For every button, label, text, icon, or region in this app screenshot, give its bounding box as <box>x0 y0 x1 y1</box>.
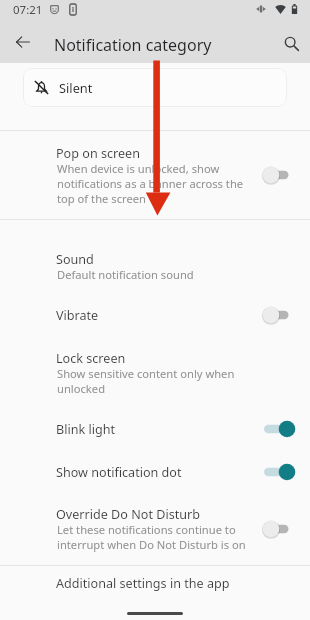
staticText: Pop on screen <box>56 145 140 162</box>
button[interactable]: Additional settings in the app <box>0 564 310 602</box>
staticText: Lock screen <box>56 350 126 367</box>
button[interactable]: Toggle off <box>262 517 298 541</box>
staticText: Default notification sound <box>57 267 194 282</box>
button[interactable]: Search <box>277 29 305 57</box>
staticText: Sound <box>56 251 94 268</box>
staticText: 07:21 <box>13 2 43 18</box>
staticText: Override Do Not Disturb <box>56 506 200 523</box>
button[interactable]: Show notification dot <box>0 453 310 491</box>
staticText: Silent <box>59 79 93 96</box>
staticText: Notification category <box>54 34 212 56</box>
button[interactable]: Toggle on <box>262 417 298 441</box>
staticText: Blink light <box>56 421 116 438</box>
button[interactable]: Toggle on <box>262 460 298 484</box>
button[interactable]: Sound <box>0 240 310 293</box>
staticText: Vibrate <box>56 307 99 324</box>
button[interactable]: Override Do Not Disturb <box>0 495 310 563</box>
staticText: Show notification dot <box>56 464 182 481</box>
staticText: When device is unlocked, show notificati… <box>57 161 244 206</box>
button[interactable]: Toggle off <box>262 303 298 327</box>
button[interactable]: Blink light <box>0 410 310 448</box>
staticText: Let these notifications continue to inte… <box>57 522 246 552</box>
button[interactable]: Vibrate <box>0 296 310 334</box>
button[interactable]: Lock screen <box>0 339 310 407</box>
button[interactable]: Silent <box>23 68 287 107</box>
staticText: Show sensitive content only when unlocke… <box>57 366 235 396</box>
button[interactable]: Pop on screen <box>0 134 310 216</box>
button[interactable]: Back <box>9 28 37 56</box>
staticText: Additional settings in the app <box>56 575 230 592</box>
button[interactable]: Toggle off <box>262 163 298 187</box>
